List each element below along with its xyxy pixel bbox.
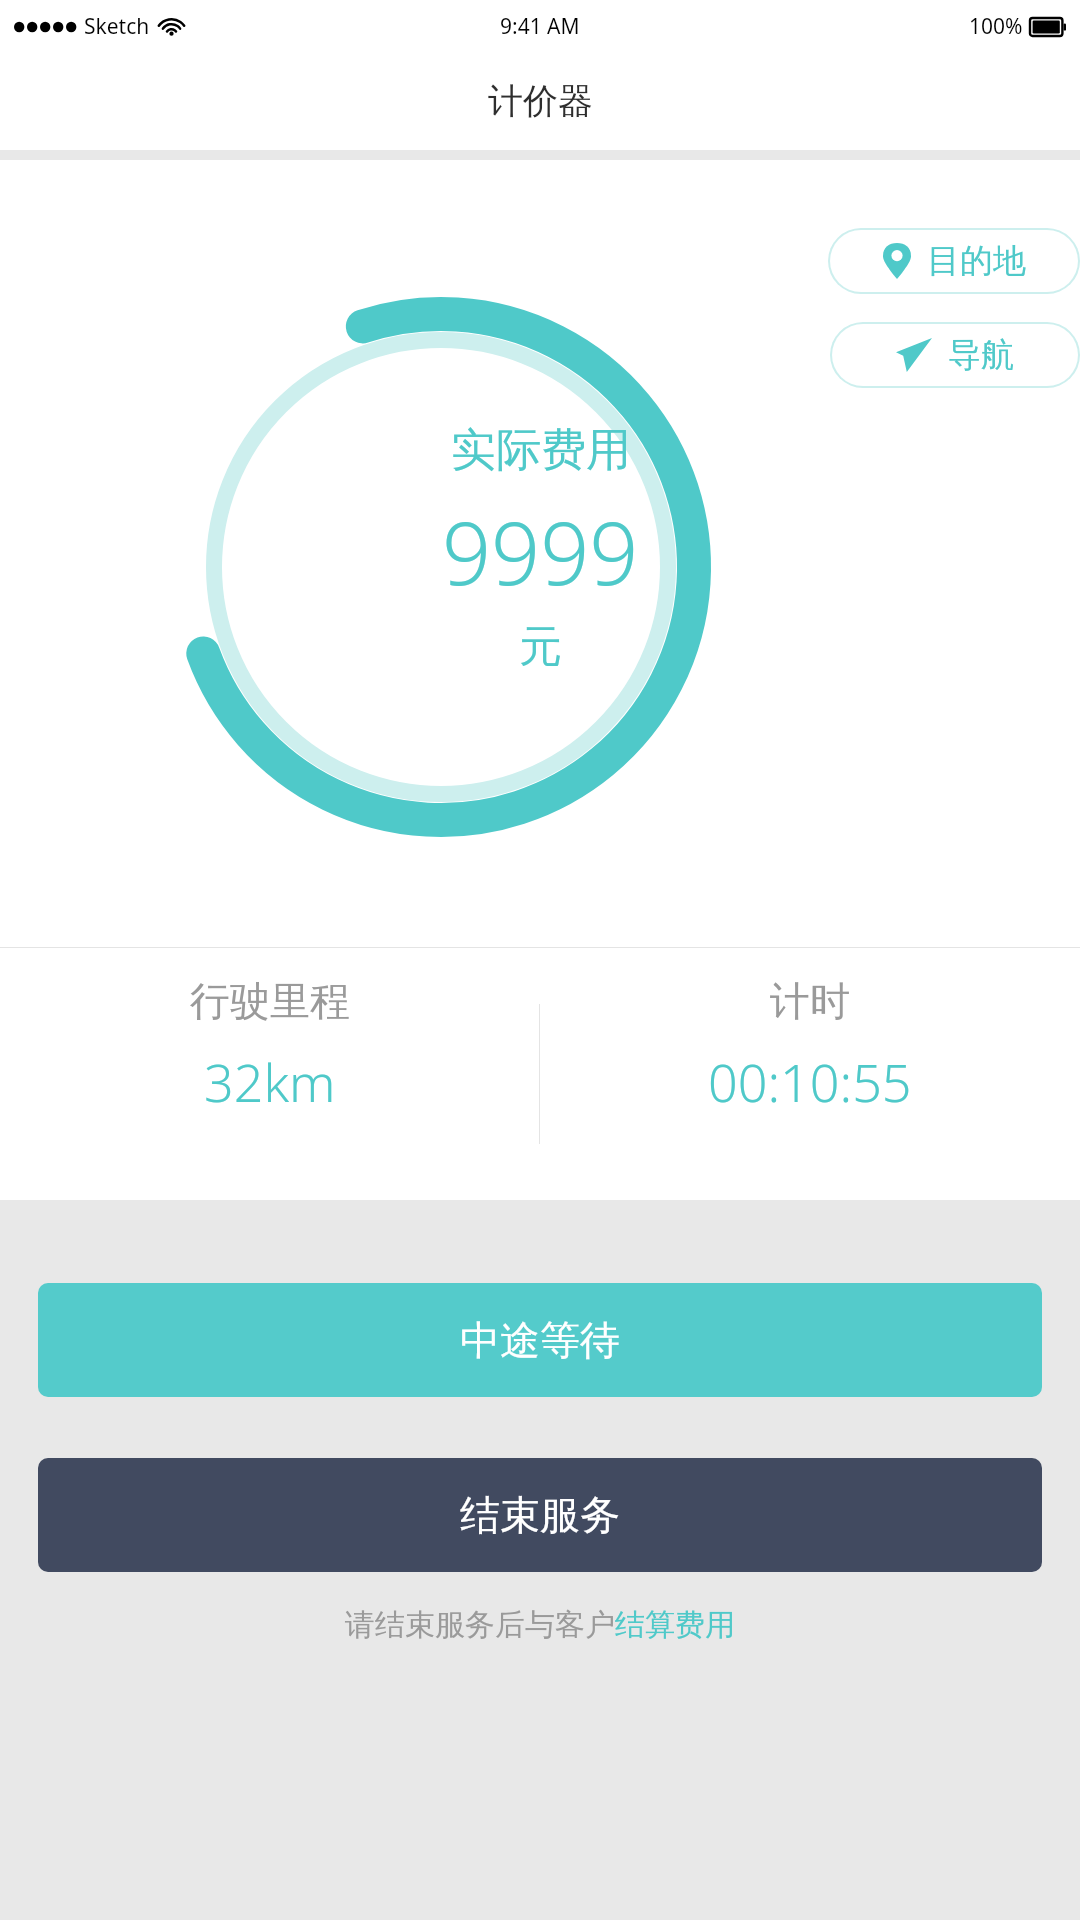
staticText: 导航	[948, 334, 1014, 376]
staticText: 中途等待	[460, 1315, 620, 1365]
button[interactable]: 目的地	[830, 230, 1078, 292]
staticText: 目的地	[927, 240, 1026, 282]
button[interactable]: 中途等待	[38, 1283, 1042, 1397]
staticText: 行驶里程	[190, 976, 350, 1026]
button[interactable]: 结束服务	[38, 1458, 1042, 1572]
button[interactable]: 导航	[832, 324, 1078, 386]
staticText: 计价器	[488, 79, 593, 123]
button[interactable]: 结算费用	[615, 1606, 735, 1644]
staticText: 请结束服务后与客户	[345, 1606, 615, 1644]
staticText: 32km	[204, 1046, 336, 1117]
staticText: 100%	[969, 12, 1023, 41]
staticText: 结束服务	[460, 1490, 620, 1540]
staticText: 9999	[442, 493, 639, 610]
staticText: 元	[519, 620, 562, 674]
staticText: 计时	[770, 976, 850, 1026]
staticText: 实际费用	[451, 422, 631, 479]
staticText: Sketch	[84, 12, 150, 41]
staticText: 00:10:55	[708, 1046, 912, 1117]
staticText: 9:41 AM	[500, 12, 580, 41]
